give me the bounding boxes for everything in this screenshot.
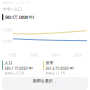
staticText: 期間を選択 <box>33 78 53 83</box>
staticText: 人口 <box>4 60 12 65</box>
staticText: 4,000 <box>3 39 12 44</box>
staticText: 統計ダッシュボード <box>3 1 30 5</box>
staticText: 261.4 万 (2020 年) <box>45 66 73 71</box>
staticText: 2000 <box>30 53 38 57</box>
staticText: 1990 <box>8 53 16 57</box>
staticText: 6,000 <box>3 28 12 32</box>
staticText: 中学 / 人口 <box>3 6 22 12</box>
staticText: 2010 <box>52 53 60 57</box>
staticText: 前年比 +0.3% <box>4 71 24 75</box>
staticText: 世帯 <box>45 60 53 65</box>
staticText: ⌄ <box>54 79 57 83</box>
button[interactable]: 人口 <box>2 60 41 75</box>
button[interactable]: 世帯 <box>43 60 82 75</box>
staticText: 583.1 万 (2020 年) <box>4 66 32 71</box>
staticText: 2020 <box>74 53 82 57</box>
staticText: 前年比 +1.1% <box>45 71 65 75</box>
button[interactable]: 期間を選択 <box>30 77 60 83</box>
staticText: 583.1万 (2020 年) <box>5 14 34 20</box>
